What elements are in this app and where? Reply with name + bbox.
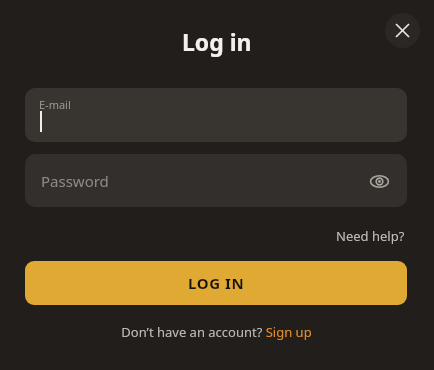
button[interactable]: LOG IN [25, 261, 407, 305]
button[interactable]: E-mail [25, 88, 407, 142]
staticText: LOG IN [188, 273, 245, 293]
button[interactable]: Need help? [334, 225, 407, 247]
staticText: Don’t have an account? Sign up [121, 323, 312, 341]
button[interactable]: Don’t have an account? Sign up [119, 321, 314, 343]
staticText: Need help? [336, 227, 405, 245]
button[interactable]: Password [25, 154, 407, 207]
button[interactable]: Close [385, 13, 420, 48]
staticText: Password [41, 171, 109, 191]
staticText: E-mail [39, 97, 71, 112]
staticText: Log in [182, 26, 252, 57]
button[interactable]: Show password [364, 166, 394, 196]
